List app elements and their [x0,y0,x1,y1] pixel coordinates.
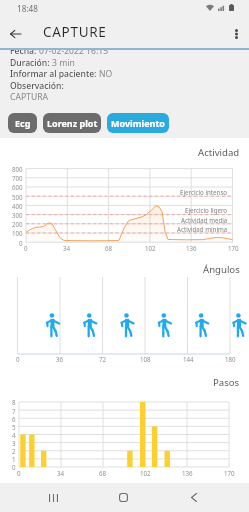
staticText: Actividad media [181,216,228,224]
staticText: 07-02-2022 16:15 [39,48,109,57]
staticText: Pasos [213,376,240,389]
button[interactable]: Back [5,23,26,44]
staticText: 500 [12,193,23,201]
staticText: Ángulos [203,263,240,276]
staticText: 102 [140,469,151,477]
staticText: Ejercicio intenso [180,188,228,196]
staticText: 180 [225,355,236,363]
staticText: 108 [140,355,151,363]
staticText: 8 [12,398,16,406]
staticText: 68 [105,244,113,252]
staticText: Movimiento [111,117,165,129]
staticText: 700 [12,174,23,182]
staticText: 102 [145,244,156,252]
button[interactable]: Movimiento [107,113,169,133]
staticText: CAPTURE [43,23,107,41]
staticText: Actividad [198,146,240,159]
button[interactable]: Lorenz plot [43,113,101,133]
staticText: 4 [12,431,16,439]
staticText: 136 [186,244,197,252]
staticText: 100 [12,229,23,237]
staticText: 600 [12,183,23,191]
staticText: Actividad mínima [177,225,228,233]
staticText: 34 [63,244,71,252]
staticText: Informar al paciente: [10,68,99,80]
staticText: Observación: [10,80,64,92]
staticText: 0 [24,244,28,252]
staticText: 36 [56,355,64,363]
button[interactable]: More options [226,24,246,44]
staticText: 0 [19,239,23,247]
staticText: 200 [12,220,23,228]
staticText: 136 [182,469,193,477]
staticText: 0 [12,463,16,471]
staticText: 300 [12,211,23,219]
staticText: 34 [57,469,65,477]
staticText: Duración: [10,57,52,69]
staticText: Ejercicio ligero [185,206,228,214]
button[interactable]: Home [109,483,138,512]
staticText: 2 [12,447,16,455]
staticText: 5 [12,423,16,431]
staticText: 0 [17,469,21,477]
staticText: 18:48 [17,3,38,14]
button[interactable]: Back [179,483,208,512]
staticText: 400 [12,202,23,210]
staticText: 3 min [52,57,75,69]
staticText: Fecha: [10,48,39,57]
button[interactable]: Ecg [8,113,37,133]
staticText: 800 [12,165,23,173]
staticText: CAPTURA [10,91,49,103]
staticText: Ecg [15,117,31,129]
staticText: 0 [16,355,20,363]
staticText: Lorenz plot [47,117,98,129]
staticText: 170 [224,469,235,477]
staticText: 6 [12,415,16,423]
button[interactable]: Recents [39,483,68,512]
staticText: 144 [183,355,194,363]
staticText: 7 [12,407,16,415]
staticText: NO [99,68,113,80]
staticText: 170 [228,244,239,252]
staticText: 68 [99,469,107,477]
staticText: 3 [12,439,16,447]
staticText: 72 [99,355,107,363]
staticText: 1 [12,455,16,463]
